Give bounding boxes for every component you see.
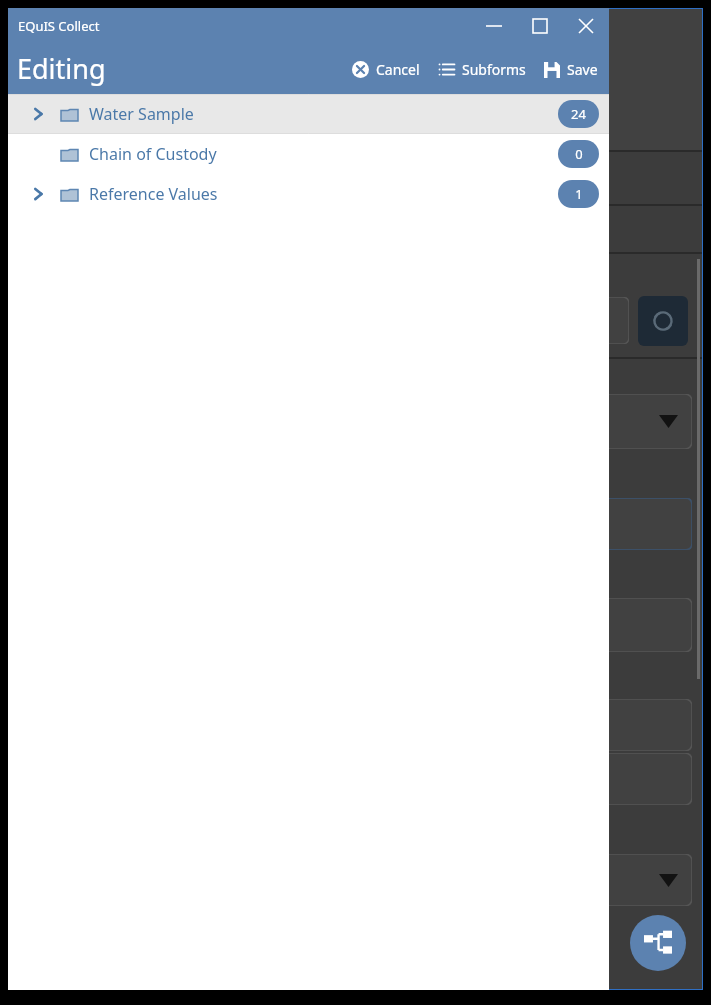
button[interactable]: Close [563, 8, 609, 43]
staticText: 0 [575, 145, 583, 163]
staticText: Editing [17, 50, 106, 87]
staticText: EQuIS Collect [18, 17, 100, 35]
button[interactable]: Chain of Custody [8, 134, 609, 174]
button[interactable]: Save [541, 56, 601, 83]
staticText: Chain of Custody [89, 143, 217, 165]
staticText: Subforms [462, 60, 526, 79]
button[interactable]: Cancel [349, 56, 423, 83]
staticText: 24 [571, 105, 586, 123]
button[interactable] [464, 394, 692, 449]
button[interactable] [464, 854, 692, 906]
staticText: 1 [575, 185, 583, 203]
button[interactable] [464, 699, 692, 751]
button[interactable]: Reference Values [8, 174, 609, 214]
button[interactable] [464, 753, 692, 805]
staticText: Reference Values [89, 183, 218, 205]
staticText: Save [567, 60, 598, 79]
button[interactable]: Water Sample [8, 94, 609, 134]
button[interactable]: Search [569, 161, 603, 195]
button[interactable] [464, 598, 692, 652]
button[interactable]: Maximize [517, 8, 563, 43]
button[interactable]: Subforms [630, 915, 686, 971]
button[interactable]: Minimize [471, 8, 517, 43]
staticText: Cancel [376, 60, 420, 79]
button[interactable]: Sync [638, 296, 688, 346]
staticText: Water Sample [89, 103, 194, 125]
button[interactable]: Subforms [435, 56, 529, 83]
